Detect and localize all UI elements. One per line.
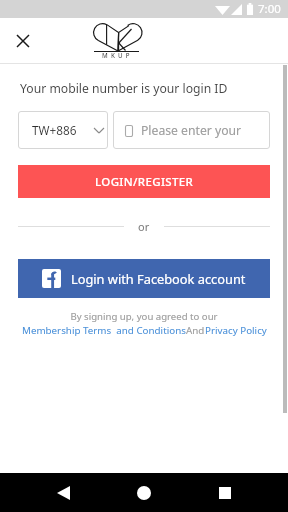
button[interactable]: TW+886 xyxy=(18,111,108,149)
button[interactable]: Back xyxy=(45,475,81,511)
staticText: By signing up, you agreed to our xyxy=(0,310,288,323)
staticText: 7:00 xyxy=(258,1,281,17)
button[interactable]: Login with Facebook account xyxy=(18,259,270,298)
staticText: or xyxy=(138,219,150,234)
button[interactable]: Please enter your xyxy=(113,111,270,149)
button[interactable]: Close xyxy=(7,25,38,56)
button[interactable]: LOGIN/REGISTER xyxy=(18,165,270,198)
staticText: Login with Facebook account xyxy=(71,270,246,287)
staticText: LOGIN/REGISTER xyxy=(95,174,194,190)
staticText: M K U P xyxy=(102,51,131,59)
staticText: And xyxy=(186,324,205,337)
staticText: Please enter your xyxy=(141,122,242,139)
staticText: TW+886 xyxy=(32,122,77,138)
button[interactable]: Membership Terms and Conditions xyxy=(22,324,186,337)
button[interactable]: Privacy Policy xyxy=(205,324,267,337)
button[interactable]: Recents xyxy=(207,475,243,511)
button[interactable]: Home xyxy=(126,475,162,511)
staticText: Your mobile number is your login ID xyxy=(20,80,228,97)
